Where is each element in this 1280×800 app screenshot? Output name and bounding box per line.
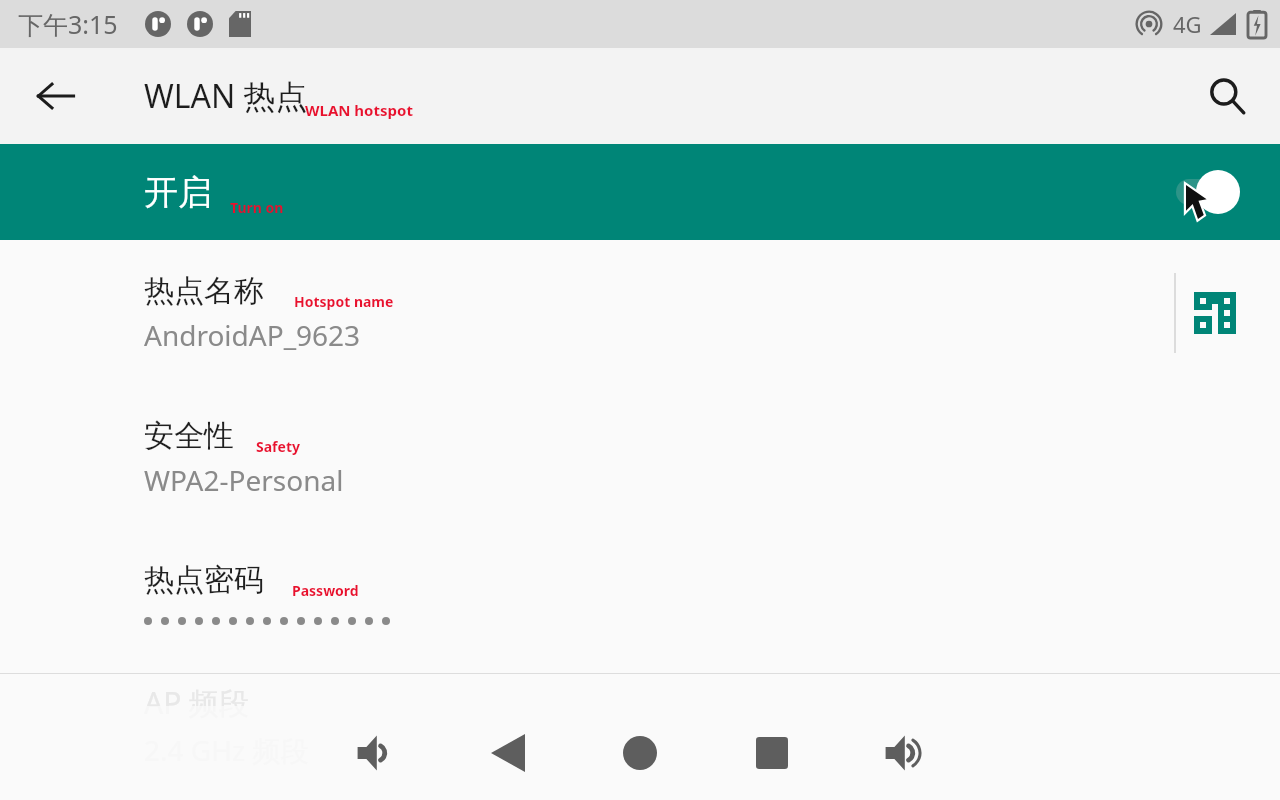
button[interactable]: Volume down — [339, 716, 413, 790]
staticText: Safety — [256, 437, 300, 456]
button[interactable]: 安全性 — [0, 385, 1280, 530]
staticText: AP 频段 — [144, 682, 250, 723]
staticText: 4G — [1173, 9, 1202, 39]
staticText: 安全性 — [144, 417, 234, 455]
staticText: AndroidAP_9623 — [144, 316, 361, 354]
button[interactable]: Back — [28, 68, 84, 124]
staticText: WLAN hotspot — [305, 100, 413, 120]
button[interactable]: 热点密码 — [0, 530, 1280, 655]
staticText: 热点密码 — [144, 561, 264, 599]
staticText: WLAN 热点 — [144, 74, 308, 118]
staticText: Turn on — [230, 198, 284, 217]
staticText: Password — [292, 581, 359, 600]
staticText: Hotspot name — [294, 292, 394, 311]
staticText: 开启 — [144, 171, 212, 214]
staticText: WPA2-Personal — [144, 461, 344, 499]
button[interactable]: Back — [471, 716, 545, 790]
button[interactable]: 热点名称 — [0, 240, 1280, 385]
button[interactable]: 开启 — [0, 144, 1280, 240]
button[interactable]: Volume up — [867, 716, 941, 790]
button[interactable]: Recent apps — [735, 716, 809, 790]
button[interactable]: Home — [603, 716, 677, 790]
button[interactable]: Share hotspot QR code — [1176, 274, 1254, 352]
staticText: 下午3:15 — [18, 7, 118, 41]
button[interactable]: Search — [1198, 67, 1256, 125]
staticText: 热点名称 — [144, 272, 264, 310]
